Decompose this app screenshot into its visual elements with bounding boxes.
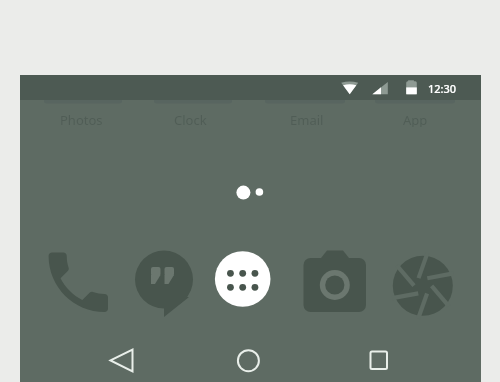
staticText: Photos [60, 111, 103, 127]
button[interactable]: Photos [36, 111, 126, 127]
staticText: Email [290, 111, 324, 127]
button[interactable] [133, 248, 195, 320]
button[interactable] [103, 343, 139, 377]
button[interactable] [301, 248, 369, 314]
staticText: Clock [174, 111, 207, 127]
button[interactable] [361, 343, 397, 377]
button[interactable] [46, 250, 111, 318]
staticText: 12:30 [428, 81, 457, 96]
button[interactable] [231, 343, 267, 377]
staticText: App [403, 111, 428, 127]
button[interactable] [214, 250, 272, 308]
button[interactable] [392, 255, 454, 317]
